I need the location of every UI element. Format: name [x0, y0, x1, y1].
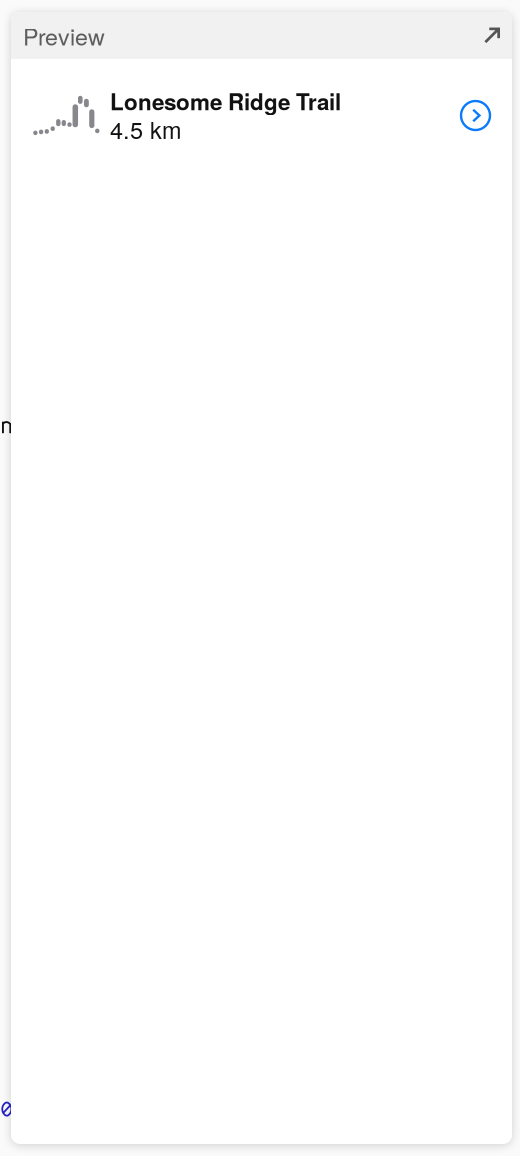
staticText: Lonesome Ridge Trail [110, 85, 341, 117]
button[interactable]: Expand preview [475, 12, 509, 59]
staticText: 4.5 km [110, 112, 182, 146]
button[interactable]: Lonesome Ridge Trail [11, 59, 512, 155]
staticText: Preview [23, 19, 105, 52]
